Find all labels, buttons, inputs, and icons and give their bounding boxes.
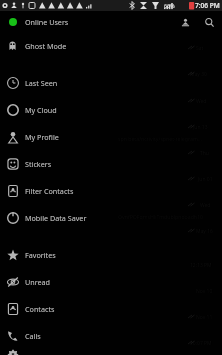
button[interactable]: Stickers bbox=[0, 150, 222, 177]
button[interactable]: My Cloud bbox=[0, 96, 222, 123]
button[interactable]: Search bbox=[199, 12, 219, 32]
staticText: 10:07 PM bbox=[190, 340, 212, 347]
button[interactable]: Favorites bbox=[0, 241, 222, 268]
staticText: Stickers bbox=[25, 159, 52, 169]
button[interactable]: Calls bbox=[0, 322, 222, 349]
staticText: My Cloud bbox=[25, 105, 57, 115]
staticText: Unread bbox=[25, 277, 51, 287]
staticText: Calls bbox=[25, 331, 41, 341]
staticText: Mobile Data Saver bbox=[25, 213, 87, 223]
button[interactable]: My Profile bbox=[0, 123, 222, 150]
staticText: Filter Contacts bbox=[25, 186, 74, 196]
staticText: 7:06 PM bbox=[195, 1, 220, 10]
button[interactable]: Last Seen bbox=[0, 69, 222, 96]
button[interactable]: Contacts bbox=[0, 295, 222, 322]
button[interactable]: Filter Contacts bbox=[0, 177, 222, 204]
staticText: Last Seen bbox=[25, 78, 58, 88]
staticText: My Profile bbox=[25, 132, 59, 142]
staticText: May 30 bbox=[190, 71, 207, 78]
staticText: Favorites bbox=[25, 250, 56, 260]
staticText: 66% bbox=[164, 2, 175, 9]
staticText: Contacts bbox=[25, 304, 55, 314]
staticText: Ghost Mode bbox=[25, 41, 67, 51]
button[interactable]: Mobile Data Saver bbox=[0, 204, 222, 231]
button[interactable]: Online Users bbox=[0, 11, 175, 32]
staticText: Online Users bbox=[25, 17, 69, 27]
button[interactable]: Ghost Mode bbox=[0, 32, 222, 59]
button[interactable]: Unread bbox=[0, 268, 222, 295]
button[interactable]: Add contact bbox=[175, 12, 195, 32]
